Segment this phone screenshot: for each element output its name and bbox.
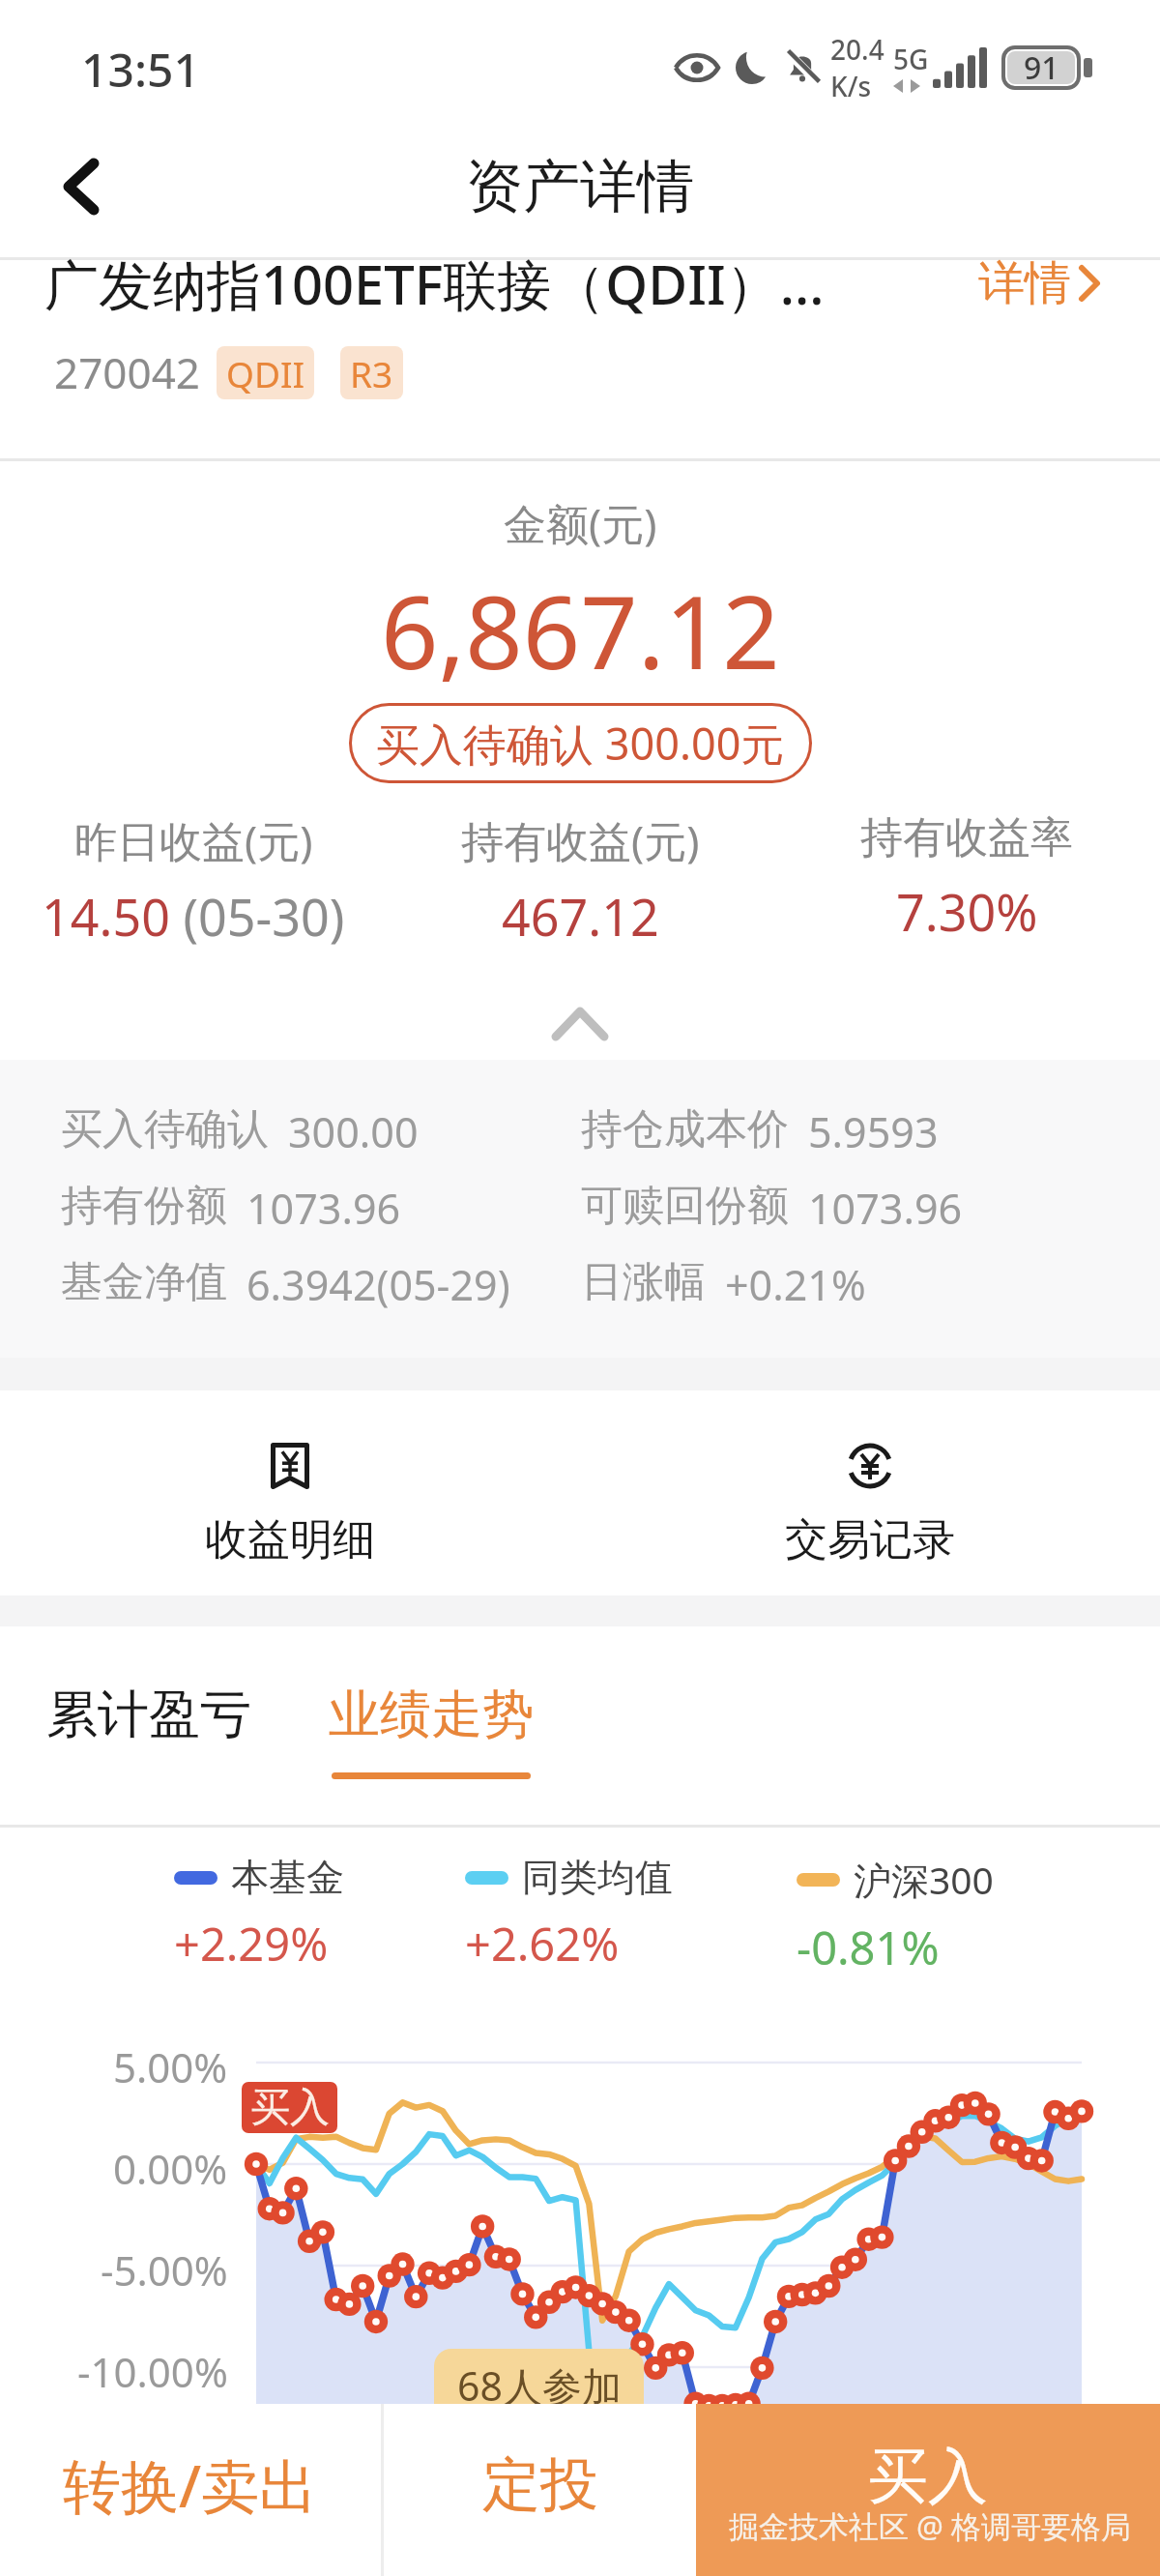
staticText: 91 [1024,46,1059,89]
staticText: 详情 [978,254,1071,312]
staticText: 270042 [54,343,201,401]
staticText: 持有收益(元) [461,811,700,869]
staticText: +0.21% [725,1256,866,1313]
staticText: 1073.96 [808,1180,963,1237]
staticText: 基金净值 [61,1256,227,1308]
button[interactable]: 买入待确认 300.00元 [349,703,812,783]
button[interactable]: 详情 [978,254,1100,312]
staticText: 6.3942(05-29) [246,1256,510,1313]
staticText: 持有收益率 [860,811,1073,864]
staticText: 5.00% [113,2039,228,2094]
staticText: R3 [350,349,393,397]
staticText: 467.12 [502,882,659,951]
staticText: 5G [893,41,929,77]
button[interactable]: 累计盈亏 [46,1683,251,1747]
staticText: 昨日收益(元) [74,811,313,869]
staticText: -10.00% [77,2344,228,2399]
staticText: 日涨幅 [581,1256,706,1308]
staticText: 买入待确认 [61,1103,269,1156]
staticText: 掘金技术社区 @ 格调哥要格局 [729,2505,1131,2546]
staticText: 本基金 [231,1854,344,1901]
staticText: 13:51 [81,38,200,101]
staticText: 6,867.12 [381,562,780,699]
staticText: 5.9593 [808,1103,939,1160]
staticText: (05-30) [170,882,345,951]
staticText: 资产详情 [466,151,694,222]
staticText: -5.00% [101,2242,228,2298]
staticText: 累计盈亏 [46,1683,251,1747]
button[interactable]: 收益明细 [0,1390,580,1595]
staticText: 可赎回份额 [581,1180,789,1232]
staticText: 买入 [868,2439,988,2514]
staticText: 持有份额 [61,1180,227,1232]
button[interactable]: 转换/卖出 [0,2404,381,2576]
staticText: 金额(元) [504,494,657,552]
button[interactable]: 定投 [384,2404,696,2576]
button[interactable]: 业绩走势 [329,1683,534,1779]
staticText: 沪深300 [854,1854,994,1905]
staticText: 广发纳指100ETF联接（QDII）... [44,247,978,320]
staticText: 7.30% [896,877,1038,946]
staticText: 转换/卖出 [63,2445,318,2525]
staticText: 业绩走势 [329,1683,534,1747]
staticText: 买入 [250,2083,330,2133]
staticText: 买入待确认 300.00元 [376,714,785,773]
staticText: QDII [226,349,304,397]
staticText: 收益明细 [205,1513,375,1566]
staticText: 14.50 [42,882,170,951]
staticText: 定投 [482,2448,598,2522]
staticText: 20.4 [830,31,884,68]
button[interactable]: 交易记录 [580,1390,1160,1595]
button[interactable]: 买入 [696,2404,1160,2576]
button[interactable]: Collapse [0,988,1160,1060]
staticText: 持仓成本价 [581,1103,789,1156]
staticText: 同类均值 [522,1854,673,1901]
staticText: 交易记录 [785,1513,955,1566]
button[interactable]: Back [23,129,139,245]
staticText: 1073.96 [246,1180,401,1237]
staticText: K/s [830,68,872,104]
staticText: -0.81% [797,1917,940,1973]
staticText: +2.29% [174,1913,329,1973]
staticText: 0.00% [113,2141,228,2196]
staticText: 68人参加 [457,2358,622,2413]
staticText: +2.62% [465,1913,620,1973]
staticText: 300.00 [288,1103,419,1160]
